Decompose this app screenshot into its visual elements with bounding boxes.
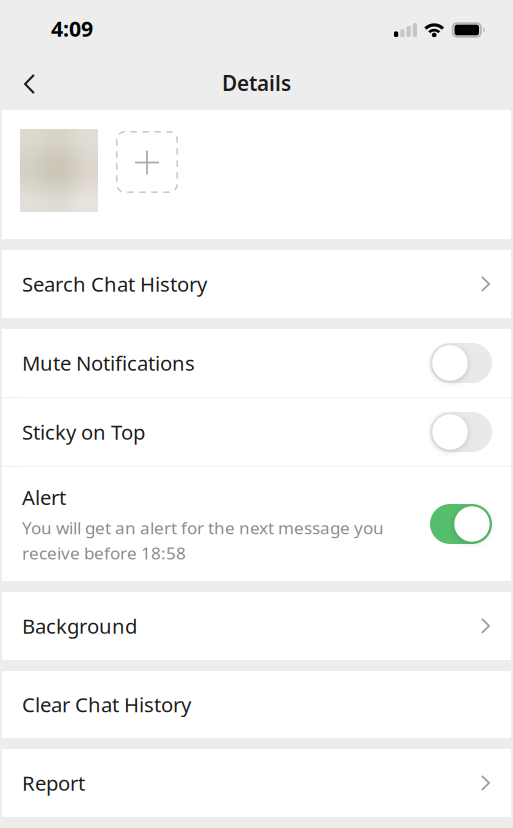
staticText: receive before 18:58 [22,541,186,564]
button[interactable]: Add participant [116,131,178,193]
staticText: You will get an alert for the next messa… [22,516,384,539]
button[interactable]: Contact avatar [20,129,98,212]
staticText: Details [222,69,291,97]
button[interactable]: Alert [0,467,513,581]
button[interactable]: Report [0,749,513,817]
staticText: Mute Notifications [22,349,195,377]
button[interactable]: Sticky on Top [0,398,513,466]
staticText: Report [22,769,85,797]
staticText: Search Chat History [22,270,207,298]
staticText: Clear Chat History [22,691,191,718]
staticText: Sticky on Top [22,418,145,446]
staticText: Alert [22,483,66,511]
button[interactable]: Background [0,592,513,660]
staticText: 4:09 [51,14,93,43]
button[interactable]: Search Chat History [0,250,513,318]
button[interactable]: Clear Chat History [0,671,513,738]
button[interactable]: Mute Notifications [0,329,513,397]
staticText: Background [22,612,137,640]
button[interactable]: Back [0,56,56,110]
